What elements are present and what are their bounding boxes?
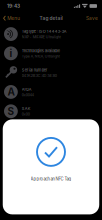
button[interactable]: Serial number [0,63,102,82]
staticText: 0x0044 [22,93,34,97]
staticText: Type A, NfcA, Ultralight [22,54,60,58]
staticText: NXP - MIFARE Ultralight [22,35,61,39]
button[interactable]: Tag type : ISO 14443-3A [0,24,102,44]
staticText: A [7,86,14,98]
staticText: ATQA [22,87,32,92]
button[interactable]: Save [83,13,102,23]
button[interactable]: S [0,102,102,121]
staticText: Save [86,15,98,21]
staticText: SAK [22,106,31,111]
button[interactable]: Menu [0,13,23,23]
staticText: i [9,47,12,59]
staticText: Menu [7,15,20,21]
button[interactable]: A [0,82,102,102]
staticText: 04:1A:2B:3C:4D:5E:80 [22,73,57,78]
staticText: Technologies available [22,48,60,53]
staticText: Tag detail [39,15,62,21]
staticText: Tag type : ISO 14443-3A [22,29,67,34]
staticText: S [7,105,14,117]
staticText: 19:43 [7,3,20,9]
staticText: Serial number [22,68,48,72]
staticText: Approach an NFC Tag [30,176,71,181]
button[interactable]: i [0,44,102,63]
staticText: 0x00 [22,112,30,116]
